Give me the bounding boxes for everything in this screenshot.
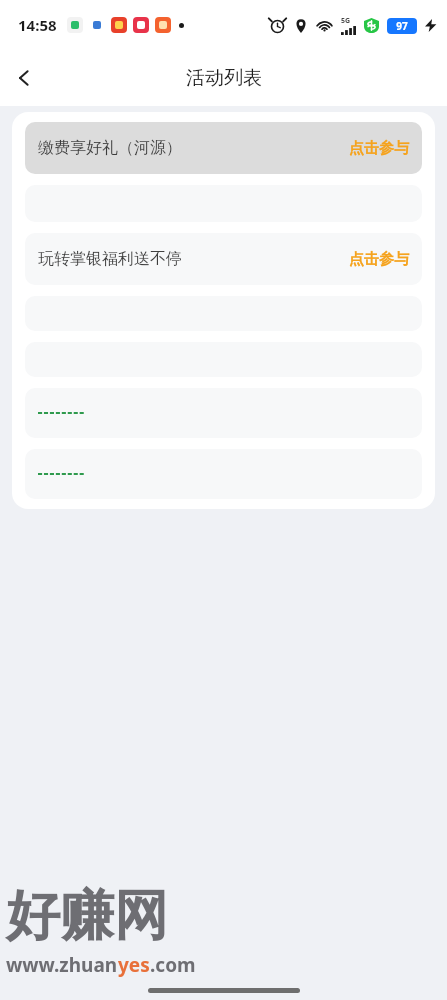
staticText: www.zhuan — [6, 952, 118, 978]
staticText: 14:58 — [18, 15, 57, 35]
staticText: .com — [150, 952, 196, 978]
button[interactable]: Back — [0, 54, 48, 102]
staticText: 点击参与 — [349, 250, 409, 269]
staticText: 缴费享好礼（河源） — [38, 138, 182, 158]
button[interactable] — [25, 449, 422, 499]
staticText: 好赚网 — [6, 882, 168, 950]
button[interactable] — [25, 388, 422, 438]
staticText: 点击参与 — [349, 139, 409, 158]
staticText: 玩转掌银福利送不停 — [38, 249, 182, 269]
button[interactable]: 玩转掌银福利送不停 — [25, 233, 422, 285]
staticText: 97 — [396, 19, 408, 33]
staticText: 5G — [341, 16, 351, 26]
button[interactable]: 缴费享好礼（河源） — [25, 122, 422, 174]
staticText: yes — [118, 952, 150, 978]
staticText: 活动列表 — [186, 66, 262, 90]
